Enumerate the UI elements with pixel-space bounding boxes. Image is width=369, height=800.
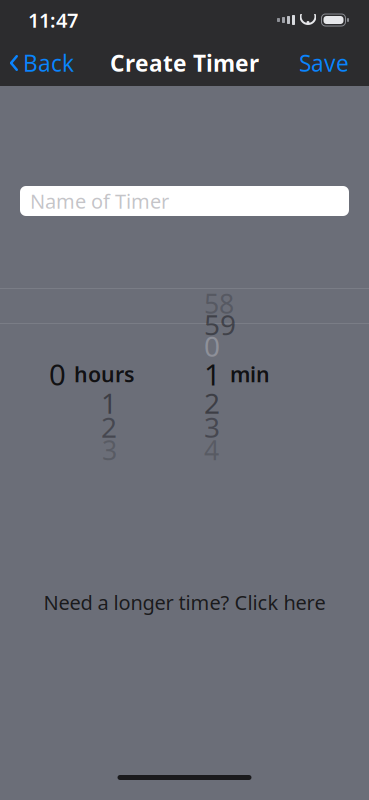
staticText: 2: [101, 408, 117, 446]
staticText: 3: [204, 408, 220, 446]
staticText: Save: [299, 48, 349, 78]
button[interactable]: Need a longer time? Click here: [31, 581, 337, 624]
staticText: 3: [102, 432, 117, 468]
staticText: 0: [204, 327, 220, 365]
staticText: 1: [101, 384, 117, 422]
staticText: 2: [204, 384, 220, 422]
staticText: 4: [204, 432, 219, 468]
staticText: 58: [204, 286, 234, 321]
button[interactable]: Save: [287, 40, 361, 86]
staticText: Back: [23, 48, 74, 78]
staticText: 59: [204, 306, 236, 343]
button[interactable]: Name of Timer: [20, 186, 349, 216]
staticText: Need a longer time? Click here: [43, 589, 325, 616]
button[interactable]: Back: [0, 40, 84, 86]
staticText: 11:47: [28, 7, 78, 33]
staticText: Create Timer: [110, 48, 259, 78]
staticText: min: [230, 360, 270, 388]
staticText: hours: [74, 360, 135, 388]
staticText: Name of Timer: [30, 188, 169, 214]
staticText: 0: [49, 354, 66, 393]
staticText: 1: [204, 354, 221, 393]
